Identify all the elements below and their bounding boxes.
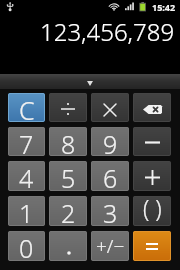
staticText: 9 <box>103 127 118 156</box>
button[interactable]: 1 <box>8 196 45 226</box>
staticText: C <box>19 93 35 122</box>
button[interactable]: Plus <box>133 161 171 191</box>
staticText: 4 <box>19 161 34 191</box>
button[interactable]: 5 <box>49 161 87 191</box>
button[interactable]: +/− <box>91 231 129 261</box>
button[interactable]: Minus <box>133 127 171 156</box>
button[interactable]: 2 <box>49 196 87 226</box>
staticText: 5 <box>61 161 76 191</box>
button[interactable]: 6 <box>91 161 129 191</box>
staticText: 2 <box>61 196 76 226</box>
button[interactable]: Backspace <box>133 93 171 122</box>
button[interactable]: 3 <box>91 196 129 226</box>
staticText: 3 <box>103 196 118 226</box>
button[interactable]: Divide <box>49 93 87 122</box>
button[interactable]: 9 <box>91 127 129 156</box>
button[interactable]: Decimal point <box>49 231 87 261</box>
staticText: +/− <box>96 233 125 259</box>
staticText: 15:42 <box>152 1 176 13</box>
button[interactable]: 4 <box>8 161 45 191</box>
button[interactable]: Equals <box>133 231 171 261</box>
button[interactable]: Show advanced pad <box>0 74 180 89</box>
button[interactable]: 0 <box>8 231 45 261</box>
staticText: 7 <box>19 127 34 156</box>
staticText: 8 <box>61 127 76 156</box>
button[interactable]: ( ) <box>133 196 171 226</box>
staticText: ( ) <box>143 196 162 222</box>
staticText: 123,456,789 <box>40 15 175 48</box>
button[interactable]: Multiply <box>91 93 129 122</box>
button[interactable]: 8 <box>49 127 87 156</box>
staticText: 0 <box>19 231 34 261</box>
button[interactable]: C <box>8 93 45 122</box>
staticText: 1 <box>19 196 34 226</box>
button[interactable]: 7 <box>8 127 45 156</box>
staticText: 6 <box>103 161 118 191</box>
